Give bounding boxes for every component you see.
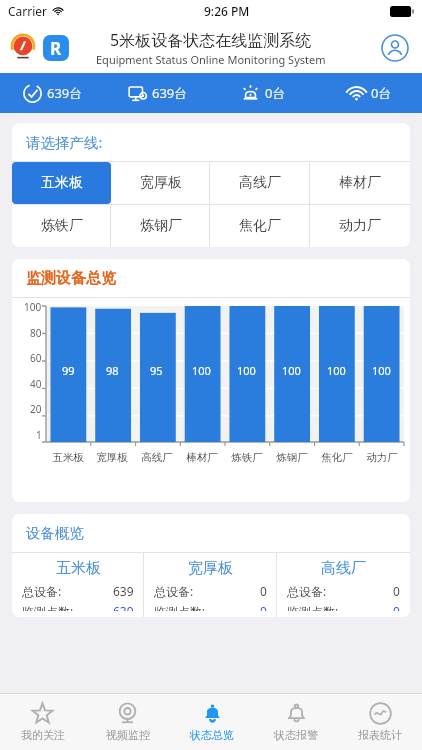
staticText: 639台 [47, 84, 83, 102]
button[interactable]: 状态报警 [254, 694, 338, 750]
staticText: 80 [30, 326, 42, 340]
staticText: 639台 [152, 84, 188, 102]
staticText: 棒材厂 [186, 451, 218, 464]
staticText: 0 [260, 603, 267, 611]
staticText: 99 [62, 363, 75, 378]
staticText: 总设备: [154, 583, 194, 599]
staticText: 0 [393, 583, 400, 599]
button[interactable]: 炼铁厂 [12, 205, 111, 247]
staticText: 0 [260, 583, 267, 599]
staticText: 炼钢厂 [276, 451, 308, 464]
staticText: 9:26 PM [204, 3, 250, 19]
staticText: 监测点数: [22, 603, 74, 611]
button[interactable]: 炼钢厂 [111, 205, 210, 247]
staticText: 动力厂 [366, 451, 398, 464]
staticText: 1 [36, 428, 42, 442]
button[interactable]: 639台 [0, 73, 105, 113]
staticText: 监测点数: [154, 603, 206, 611]
staticText: 宽厚板 [96, 451, 128, 464]
staticText: 设备概览 [26, 524, 84, 542]
button[interactable]: 我的关注 [0, 694, 85, 750]
staticText: 100 [237, 363, 256, 378]
staticText: 0 [393, 603, 400, 611]
staticText: 总设备: [22, 583, 62, 599]
staticText: 炼钢厂 [140, 217, 182, 235]
staticText: 我的关注 [21, 728, 65, 742]
staticText: 100 [327, 363, 346, 378]
staticText: 五米板 [56, 559, 101, 578]
button[interactable]: 焦化厂 [210, 205, 310, 247]
staticText: 0台 [371, 84, 392, 102]
staticText: 高线厂 [141, 451, 173, 464]
staticText: 棒材厂 [339, 174, 381, 192]
button[interactable]: 报表统计 [338, 694, 422, 750]
staticText: 40 [30, 377, 42, 391]
button[interactable]: 五米板 [12, 162, 111, 204]
staticText: 0台 [265, 84, 286, 102]
staticText: 监测点数: [287, 603, 339, 611]
button[interactable]: 639台 [105, 73, 210, 113]
button[interactable]: 动力厂 [310, 205, 410, 247]
button[interactable]: 视频监控 [85, 694, 170, 750]
staticText: R [50, 37, 62, 60]
staticText: 5米板设备状态在线监测系统 [110, 29, 312, 51]
staticText: 639 [113, 583, 134, 599]
staticText: 状态总览 [190, 728, 234, 742]
staticText: 98 [106, 363, 119, 378]
staticText: 100 [24, 300, 42, 314]
staticText: 60 [30, 351, 42, 365]
staticText: 五米板 [52, 451, 84, 464]
staticText: 95 [150, 363, 163, 378]
staticText: 20 [30, 402, 42, 416]
staticText: 高线厂 [321, 559, 366, 578]
staticText: 请选择产线: [26, 132, 103, 152]
staticText: 五米板 [41, 174, 83, 192]
staticText: 639 [113, 603, 134, 611]
staticText: 总设备: [287, 583, 327, 599]
staticText: 炼铁厂 [41, 217, 83, 235]
button[interactable]: 状态总览 [170, 694, 254, 750]
staticText: 100 [282, 363, 301, 378]
button[interactable]: 宽厚板 [111, 162, 210, 204]
staticText: 状态报警 [274, 728, 318, 742]
staticText: 100 [192, 363, 211, 378]
staticText: 动力厂 [339, 217, 381, 235]
staticText: 100 [372, 363, 391, 378]
staticText: 高线厂 [239, 174, 281, 192]
staticText: Carrier [8, 3, 48, 19]
button[interactable]: 棒材厂 [310, 162, 410, 204]
staticText: Equipment Status Online Monitoring Syste… [96, 52, 326, 67]
staticText: 宽厚板 [188, 559, 233, 578]
button[interactable]: 高线厂 [210, 162, 310, 204]
button[interactable]: 宽厚板 [144, 553, 277, 617]
staticText: 炼铁厂 [231, 451, 263, 464]
button[interactable]: 0台 [316, 73, 422, 113]
staticText: 焦化厂 [321, 451, 353, 464]
staticText: 焦化厂 [239, 217, 281, 235]
button[interactable]: 高线厂 [277, 553, 410, 617]
button[interactable]: 五米板 [12, 553, 144, 617]
button[interactable]: 0台 [210, 73, 316, 113]
staticText: 宽厚板 [140, 174, 182, 192]
staticText: 报表统计 [358, 728, 402, 742]
staticText: 监测设备总览 [26, 269, 116, 288]
staticText: 视频监控 [106, 728, 150, 742]
button[interactable]: Account [380, 33, 410, 63]
